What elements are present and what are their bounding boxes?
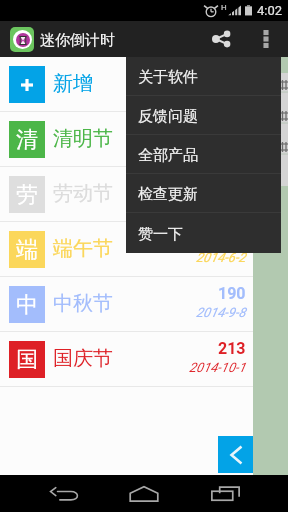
staticText: 新增 (53, 71, 93, 96)
button[interactable]: 赞一下 (126, 213, 281, 253)
button[interactable]: 端 (0, 222, 253, 276)
button[interactable]: More options (253, 21, 279, 57)
staticText: 4:02 (257, 3, 283, 18)
staticText: 中 (16, 291, 38, 319)
staticText: 190 (218, 284, 246, 303)
staticText: 劳动节 (53, 181, 113, 206)
button[interactable]: 中 (0, 277, 253, 331)
button[interactable]: 关于软件 (126, 57, 281, 95)
button[interactable]: 新增 (0, 57, 253, 111)
staticText: 2014-9-8 (196, 305, 246, 320)
staticText: 赞一下 (138, 225, 183, 244)
staticText: 2014-6-2 (196, 250, 246, 265)
staticText: 劳 (16, 181, 38, 209)
staticText: H (221, 3, 227, 12)
staticText: 213 (218, 339, 246, 358)
staticText: 国庆节 (53, 346, 113, 371)
button[interactable]: 劳 (0, 167, 253, 221)
staticText: 反馈问题 (138, 107, 198, 126)
staticText: 迷你倒计时 (40, 31, 115, 50)
button[interactable]: 检查更新 (126, 174, 281, 212)
staticText: 2014-10-1 (189, 360, 246, 375)
button[interactable]: Collapse panel (218, 436, 253, 473)
button[interactable]: 反馈问题 (126, 96, 281, 134)
button[interactable]: Recents (195, 475, 255, 512)
button[interactable]: 国 (0, 332, 253, 386)
staticText: 清 (16, 126, 38, 154)
button[interactable]: 全部产品 (126, 135, 281, 173)
staticText: 关于软件 (138, 68, 198, 87)
staticText: 端午节 (53, 236, 113, 261)
staticText: 端 (16, 236, 38, 264)
staticText: 全部产品 (138, 146, 198, 165)
button[interactable]: 清 (0, 112, 253, 166)
button[interactable]: Share (201, 21, 241, 57)
staticText: 清明节 (53, 126, 113, 151)
button[interactable]: Home (114, 475, 174, 512)
staticText: 中秋节 (53, 291, 113, 316)
staticText: 检查更新 (138, 185, 198, 204)
staticText: 国 (16, 346, 38, 374)
button[interactable]: Back (34, 475, 94, 512)
